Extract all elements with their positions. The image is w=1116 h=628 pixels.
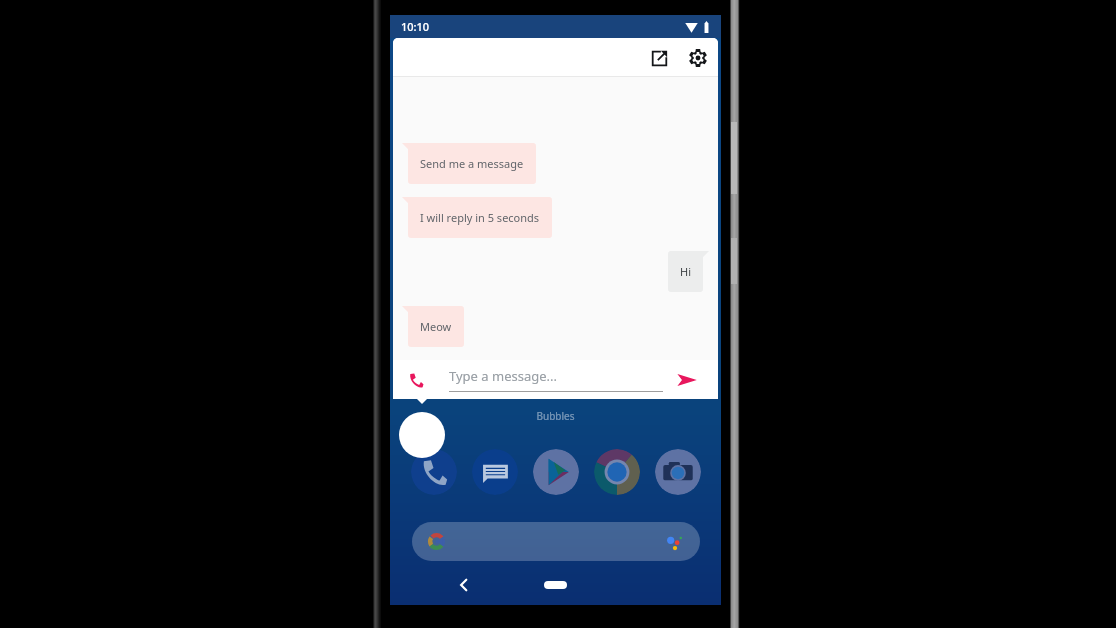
staticText: Type a message... <box>449 367 557 385</box>
button[interactable] <box>411 449 457 495</box>
button[interactable]: Back <box>451 573 475 597</box>
button[interactable]: Hi <box>668 251 709 292</box>
button[interactable]: Search <box>412 522 700 561</box>
button[interactable] <box>472 449 518 495</box>
staticText: I will reply in 5 seconds <box>420 210 540 225</box>
staticText: Send me a message <box>420 156 524 171</box>
button[interactable] <box>533 449 579 495</box>
button[interactable]: I will reply in 5 seconds <box>402 197 552 238</box>
button[interactable] <box>594 449 640 495</box>
button[interactable]: Send me a message <box>402 143 536 184</box>
button[interactable]: Send <box>676 369 698 391</box>
button[interactable]: Call <box>405 369 427 391</box>
button[interactable]: Settings <box>683 43 713 73</box>
button[interactable]: Home <box>544 581 567 589</box>
button[interactable] <box>655 449 701 495</box>
staticText: 10:10 <box>401 19 430 34</box>
button[interactable]: Chat bubble <box>399 412 445 458</box>
button[interactable]: Open in new window <box>644 43 674 73</box>
button[interactable]: Type a message... <box>449 366 663 392</box>
staticText: Hi <box>680 264 691 279</box>
staticText: Meow <box>420 319 452 334</box>
button[interactable]: Meow <box>402 306 464 347</box>
staticText: Bubbles <box>390 409 721 423</box>
